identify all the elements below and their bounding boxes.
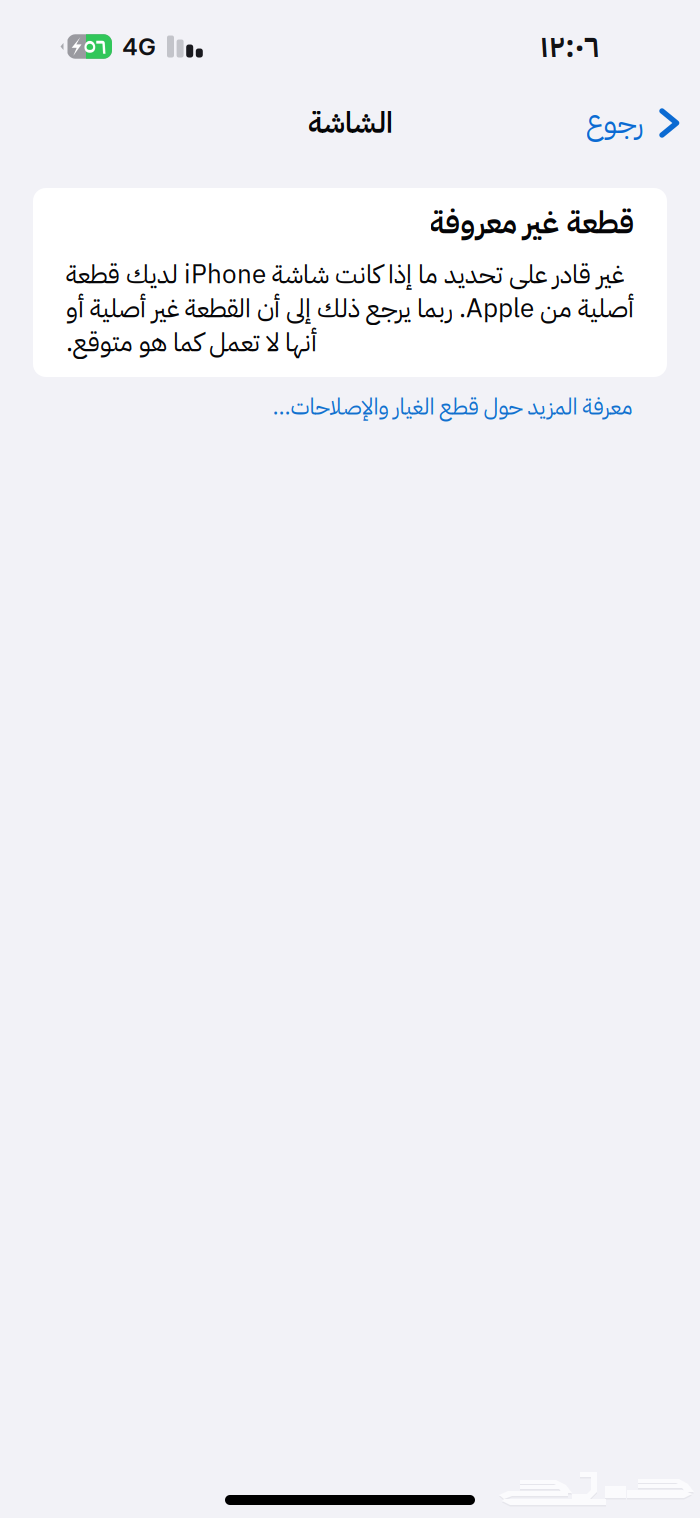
- button[interactable]: معرفة المزيد حول قطع الغيار والإصلاحات..…: [0, 377, 700, 434]
- staticText: قطعة غير معروفة: [429, 200, 634, 246]
- staticText: ٥٦: [84, 30, 107, 63]
- staticText: رجوع: [585, 100, 643, 145]
- staticText: غير قادر على تحديد ما إذا كانت شاشة iPho…: [66, 255, 634, 362]
- button[interactable]: رجوع: [585, 92, 700, 153]
- staticText: ١٢:٠٦: [540, 23, 600, 70]
- staticText: معرفة المزيد حول قطع الغيار والإصلاحات..…: [272, 390, 632, 424]
- staticText: الشاشة: [307, 101, 392, 145]
- staticText: 4G: [122, 32, 156, 61]
